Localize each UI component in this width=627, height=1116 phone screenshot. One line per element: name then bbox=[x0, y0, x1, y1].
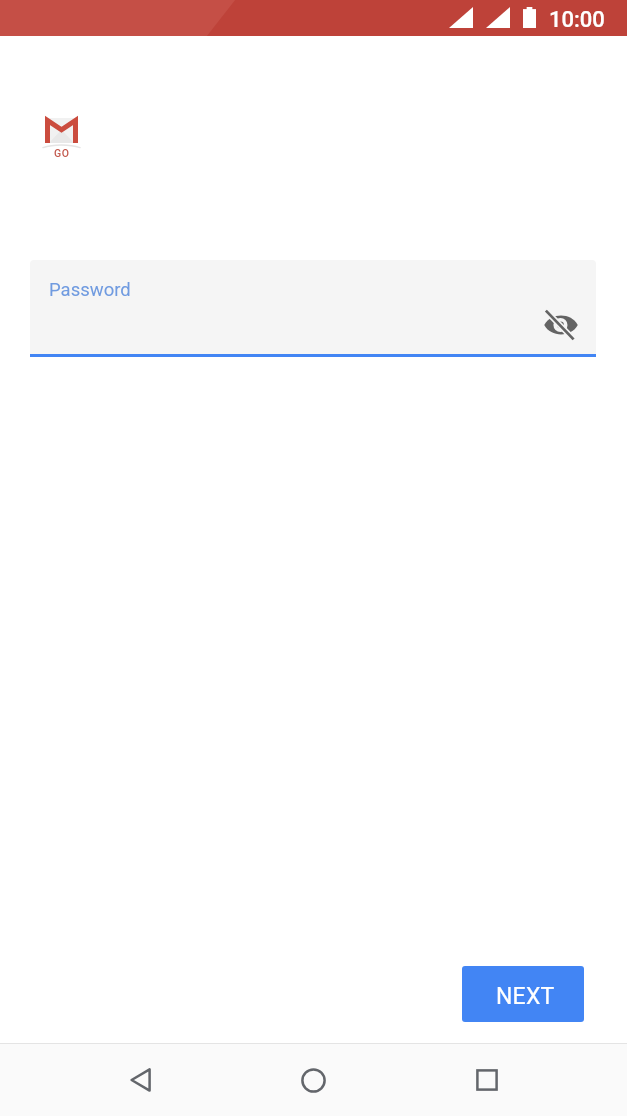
button[interactable]: Recent apps bbox=[463, 1056, 511, 1104]
staticText: GO bbox=[54, 147, 70, 159]
button[interactable]: Password bbox=[30, 260, 596, 354]
button[interactable]: Back bbox=[116, 1056, 164, 1104]
staticText: NEXT bbox=[496, 983, 555, 1010]
button[interactable]: Show password bbox=[541, 305, 581, 345]
button[interactable]: Home bbox=[289, 1056, 337, 1104]
staticText: 10:00 bbox=[549, 7, 605, 33]
button[interactable]: NEXT bbox=[462, 966, 584, 1022]
staticText: Password bbox=[49, 279, 131, 301]
